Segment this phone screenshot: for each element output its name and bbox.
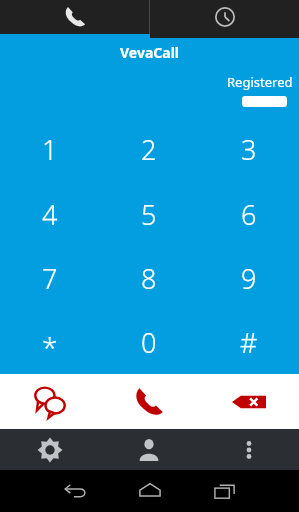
- button[interactable]: Backspace: [199, 374, 299, 429]
- staticText: 3: [241, 131, 257, 168]
- button[interactable]: Home: [112, 470, 187, 512]
- staticText: Registered: [227, 73, 293, 91]
- staticText: *: [42, 328, 58, 366]
- staticText: 2: [141, 131, 157, 168]
- staticText: VevaCall: [0, 43, 299, 62]
- button[interactable]: *: [0, 310, 99, 374]
- button[interactable]: 7: [0, 246, 99, 310]
- button[interactable]: #: [199, 310, 299, 374]
- button[interactable]: More options: [199, 429, 299, 470]
- staticText: 8: [141, 260, 157, 297]
- button[interactable]: 2: [99, 117, 199, 182]
- button[interactable]: Messages: [0, 374, 99, 429]
- button[interactable]: Recent apps: [187, 470, 262, 512]
- button[interactable]: Settings: [0, 429, 99, 470]
- button[interactable]: Call: [99, 374, 199, 429]
- staticText: #: [240, 324, 258, 361]
- button[interactable]: 9: [199, 246, 299, 310]
- staticText: 0: [141, 324, 157, 361]
- staticText: 6: [241, 196, 257, 233]
- button[interactable]: 1: [0, 117, 99, 182]
- button[interactable]: Contacts: [99, 429, 199, 470]
- button[interactable]: Call history: [150, 0, 299, 38]
- button[interactable]: Back: [37, 470, 112, 512]
- staticText: 4: [42, 196, 58, 233]
- button[interactable]: 8: [99, 246, 199, 310]
- button[interactable]: Dialpad: [0, 0, 149, 38]
- staticText: 1: [42, 131, 58, 168]
- staticText: 5: [141, 196, 157, 233]
- staticText: 9: [241, 260, 257, 297]
- button[interactable]: 4: [0, 182, 99, 246]
- button[interactable]: 6: [199, 182, 299, 246]
- button[interactable]: 5: [99, 182, 199, 246]
- staticText: 7: [42, 260, 58, 297]
- button[interactable]: 3: [199, 117, 299, 182]
- button[interactable]: 0: [99, 310, 199, 374]
